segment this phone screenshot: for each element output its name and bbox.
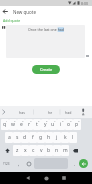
button[interactable] (1, 145, 13, 156)
staticText: 8:00 (81, 1, 88, 6)
button[interactable]: c (29, 145, 37, 156)
button[interactable]: n (53, 145, 61, 156)
button[interactable]: g (37, 132, 45, 143)
staticText: z (16, 147, 19, 154)
button[interactable] (22, 172, 34, 184)
staticText: Add quote (3, 18, 21, 23)
staticText: 5 (38, 119, 40, 122)
staticText: has (19, 110, 25, 115)
staticText: t (36, 121, 38, 128)
button[interactable]: h (45, 132, 53, 143)
staticText: n (55, 147, 59, 154)
staticText: g (39, 134, 43, 141)
button[interactable]: d (21, 132, 29, 143)
staticText: 2 (14, 119, 16, 122)
staticText: 0 (78, 119, 80, 122)
staticText: m (63, 147, 68, 154)
button[interactable] (0, 6, 11, 17)
button[interactable]: q (1, 119, 9, 130)
staticText: b (47, 147, 51, 154)
button[interactable]: f (29, 132, 37, 143)
staticText: 7 (54, 119, 56, 122)
staticText: x (24, 147, 27, 154)
staticText: i (60, 121, 62, 128)
button[interactable]: e (17, 119, 25, 130)
staticText: r (28, 121, 31, 128)
button[interactable]: b (45, 145, 53, 156)
staticText: j (56, 134, 58, 141)
staticText: d (23, 134, 27, 141)
button[interactable] (40, 172, 52, 184)
staticText: he (48, 110, 53, 115)
button[interactable] (58, 172, 70, 184)
staticText: 4 (30, 119, 32, 122)
staticText: p (75, 121, 79, 128)
button[interactable]: z (13, 145, 21, 156)
staticText: o (67, 121, 71, 128)
staticText: s (16, 134, 19, 141)
button[interactable]: o (65, 119, 73, 130)
staticText: had (65, 110, 72, 115)
button[interactable] (79, 159, 88, 168)
staticText: c (32, 147, 35, 154)
staticText: a (8, 134, 11, 141)
staticText: 8 (62, 119, 64, 122)
button[interactable]: t (33, 119, 41, 130)
staticText: 1 (6, 119, 8, 122)
button[interactable]: Once the last one had (6, 25, 85, 58)
button[interactable]: had (65, 110, 72, 115)
button[interactable]: j (53, 132, 61, 143)
button[interactable]: i (57, 119, 65, 130)
button[interactable]: has (19, 110, 25, 115)
staticText: h (47, 134, 51, 141)
staticText: Once the last one had (28, 27, 64, 32)
staticText: Create (40, 67, 53, 72)
staticText: y (44, 121, 47, 128)
button[interactable]: p (73, 119, 81, 130)
staticText: New quote (13, 9, 37, 15)
button[interactable]: s (13, 132, 21, 143)
button[interactable]: w (9, 119, 17, 130)
button[interactable]: v (37, 145, 45, 156)
staticText: 6 (46, 119, 48, 122)
staticText: 9 (70, 119, 72, 122)
button[interactable]: l (69, 132, 77, 143)
button[interactable] (24, 158, 33, 169)
button[interactable]: a (5, 132, 13, 143)
staticText: k (64, 134, 67, 141)
staticText: 3 (22, 119, 24, 122)
button[interactable]: k (61, 132, 69, 143)
button[interactable]: m (61, 145, 69, 156)
button[interactable]: x (21, 145, 29, 156)
staticText: f (32, 134, 34, 141)
staticText: l (72, 134, 74, 141)
staticText: , (18, 161, 20, 167)
button[interactable] (69, 145, 81, 156)
button[interactable]: ?123 (1, 158, 12, 169)
staticText: ?123 (3, 162, 10, 166)
button[interactable]: Create (32, 65, 60, 74)
staticText: e (20, 121, 23, 128)
button[interactable]: , (14, 158, 23, 169)
button[interactable]: r (25, 119, 33, 130)
staticText: u (51, 121, 55, 128)
button[interactable]: . (70, 158, 79, 169)
staticText: w (11, 121, 15, 128)
button[interactable]: y (41, 119, 49, 130)
button[interactable]: u (49, 119, 57, 130)
staticText: . (74, 161, 76, 167)
staticText: q (3, 121, 7, 128)
button[interactable]: he (48, 110, 53, 115)
staticText: v (40, 147, 43, 154)
